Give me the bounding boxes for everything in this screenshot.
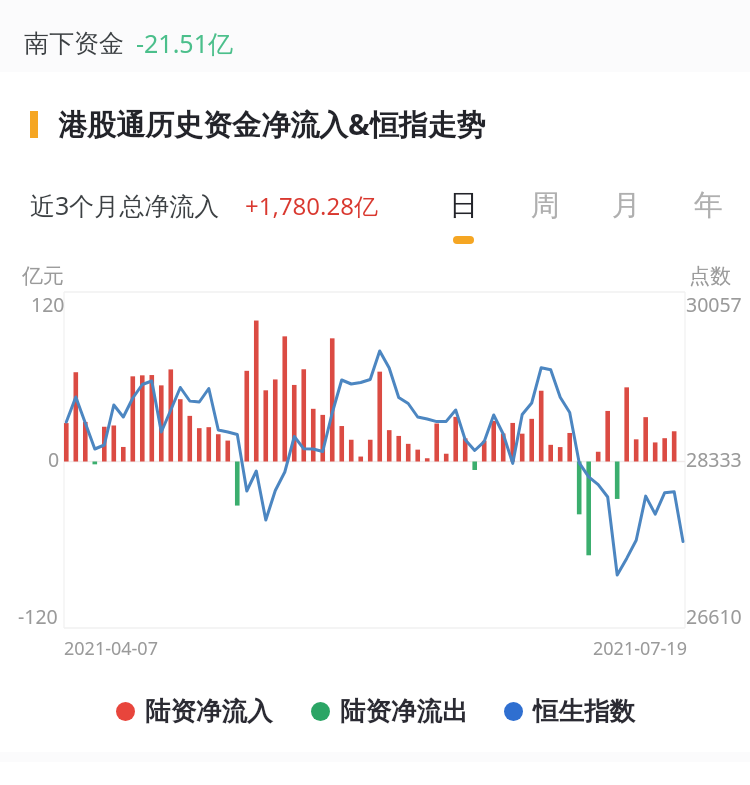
staticText: 28333 <box>686 446 742 473</box>
button[interactable]: 陆资净流入 <box>116 695 273 727</box>
staticText: 近3个月总净流入 <box>30 188 220 222</box>
staticText: -21.51亿 <box>136 26 233 60</box>
button[interactable]: 周 <box>507 187 583 259</box>
staticText: 点数 <box>689 263 731 289</box>
staticText: 陆资净流出 <box>340 695 468 727</box>
button[interactable]: 年 <box>670 187 746 259</box>
button[interactable]: 月 <box>588 187 664 259</box>
staticText: 陆资净流入 <box>145 695 273 727</box>
button[interactable]: 恒生指数 <box>504 695 635 727</box>
button[interactable]: 日 <box>425 187 501 259</box>
staticText: 亿元 <box>22 263 64 289</box>
staticText: -120 <box>18 603 58 630</box>
staticText: 月 <box>612 187 641 224</box>
button[interactable]: 陆资净流出 <box>311 695 468 727</box>
staticText: 年 <box>694 187 723 224</box>
staticText: 2021-04-07 <box>64 636 158 661</box>
staticText: 120 <box>31 291 65 318</box>
staticText: 日 <box>449 187 478 224</box>
staticText: 30057 <box>686 291 742 318</box>
staticText: 周 <box>531 187 560 224</box>
staticText: 恒生指数 <box>533 695 635 727</box>
staticText: 26610 <box>686 603 742 630</box>
staticText: 港股通历史资金净流入&恒指走势 <box>58 104 486 144</box>
staticText: 南下资金 <box>24 28 124 59</box>
staticText: 2021-07-19 <box>593 636 687 661</box>
staticText: 0 <box>48 446 60 473</box>
staticText: +1,780.28亿 <box>245 189 378 222</box>
